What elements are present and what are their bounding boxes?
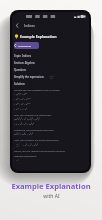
staticText: Section: Algebra <box>14 61 35 65</box>
button[interactable]: Back <box>14 22 21 29</box>
staticText: with AI <box>43 193 60 200</box>
staticText: = 4 × x⁶ × y⁴ = 4x⁶y⁴ <box>14 123 35 126</box>
staticText: Now, let's simplify the entire expressio… <box>14 138 60 141</box>
staticText: Simplify the expression: <box>14 75 45 79</box>
staticText: (2x³y²)² = 2² × (x³)² × (y²)² <box>14 118 40 121</box>
staticText: Question: <box>14 68 27 72</box>
staticText: x²y³ <box>16 159 19 161</box>
staticText: Example Explanation <box>20 34 57 39</box>
staticText: (2x³y²)² <box>49 75 55 77</box>
staticText: negative exponents: <box>14 154 37 157</box>
staticText: • aᵐ × aⁿ = aᵐ⁺ⁿ <box>14 98 31 101</box>
staticText: Finally, we can rewrite the expression w… <box>14 149 65 152</box>
button[interactable]: Regenerate Example <box>14 42 39 49</box>
staticText: • (aᵐ)ⁿ = aᵐⁿ <box>14 93 28 96</box>
staticText: • aᵐ ÷ aⁿ = aᵐ⁻ⁿ <box>14 103 31 106</box>
staticText: = x² × y³ = x²y³ <box>23 144 38 147</box>
staticText: Topic: Indices <box>14 54 32 58</box>
staticText: Solution: <box>14 82 26 86</box>
staticText: 4x⁶y⁴ <box>16 143 20 145</box>
staticText: First, let's simplify the numerator: <box>14 113 52 116</box>
staticText: Regenerate Example <box>18 44 39 47</box>
staticText: 4x⁴y <box>50 77 54 79</box>
staticText: We will use the following rules of indic… <box>14 88 60 91</box>
staticText: 1 <box>17 161 18 163</box>
staticText: 4x⁴y <box>16 145 20 147</box>
staticText: • a⁻ⁿ = 1 / aⁿ <box>14 108 28 111</box>
staticText: Therefore, the expression becomes: <box>14 128 55 131</box>
staticText: Indices <box>24 24 35 28</box>
staticText: Example Explanation <box>11 181 91 191</box>
staticText: 4x⁶y⁴ ÷ 4x⁴y = x²y³ <box>14 133 33 136</box>
